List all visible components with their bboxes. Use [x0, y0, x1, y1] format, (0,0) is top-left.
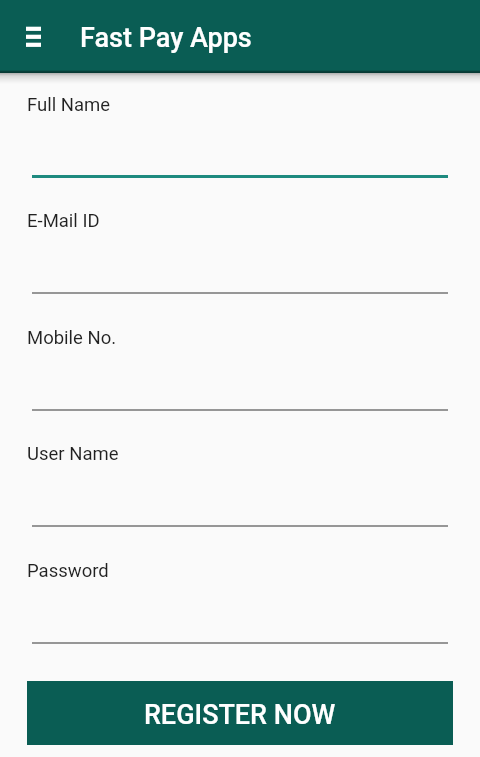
button[interactable]: E-Mail ID	[32, 191, 448, 299]
button[interactable]: Mobile No.	[32, 308, 448, 416]
staticText: Fast Pay Apps	[80, 22, 252, 54]
staticText: Full Name	[27, 94, 111, 116]
button[interactable]: Open navigation drawer	[18, 20, 49, 53]
staticText: E-Mail ID	[27, 210, 100, 232]
staticText: REGISTER NOW	[144, 699, 336, 731]
button[interactable]: Password	[32, 541, 448, 649]
button[interactable]: REGISTER NOW	[27, 681, 453, 745]
staticText: Mobile No.	[27, 327, 117, 349]
staticText: User Name	[27, 443, 119, 465]
button[interactable]: Full Name	[32, 75, 448, 183]
button[interactable]: User Name	[32, 424, 448, 532]
staticText: Password	[27, 560, 109, 582]
